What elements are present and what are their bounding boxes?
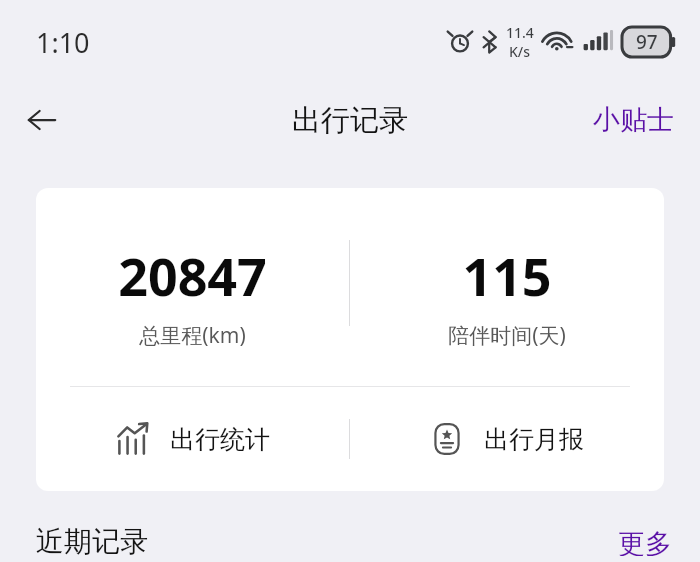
staticText: 115 bbox=[462, 240, 552, 311]
staticText: 出行统计 bbox=[170, 424, 270, 455]
staticText: 11.4 bbox=[506, 23, 534, 42]
staticText: 陪伴时间(天) bbox=[448, 321, 566, 350]
staticText: 近期记录 bbox=[36, 524, 148, 559]
button[interactable]: 小贴士 bbox=[581, 97, 686, 143]
staticText: 97 bbox=[636, 29, 658, 55]
button[interactable]: Back bbox=[14, 92, 70, 148]
staticText: 总里程(km) bbox=[139, 321, 246, 350]
button[interactable]: 更多 bbox=[606, 521, 684, 562]
staticText: K/s bbox=[509, 42, 531, 61]
staticText: 20847 bbox=[118, 240, 267, 311]
staticText: 小贴士 bbox=[593, 103, 674, 137]
staticText: 更多 bbox=[618, 527, 672, 556]
staticText: 出行记录 bbox=[292, 102, 408, 139]
button[interactable]: 出行统计 bbox=[36, 387, 349, 491]
staticText: 1:10 bbox=[36, 24, 90, 61]
button[interactable]: 出行月报 bbox=[350, 387, 664, 491]
staticText: 出行月报 bbox=[484, 424, 584, 455]
